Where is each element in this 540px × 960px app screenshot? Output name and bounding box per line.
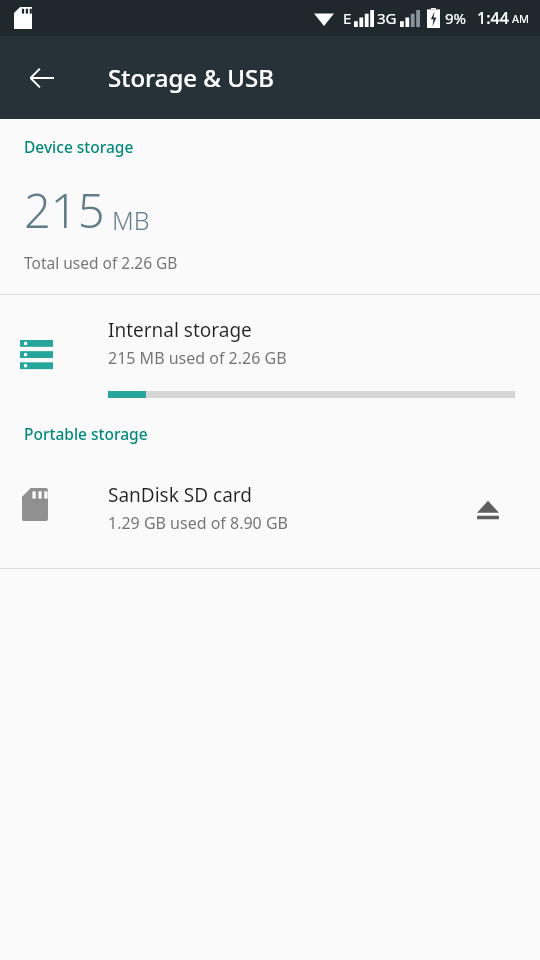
button[interactable]: Internal storage	[0, 295, 540, 409]
button[interactable]: Back	[16, 52, 68, 104]
staticText: Portable storage	[24, 423, 148, 444]
staticText: 215 MB used of 2.26 GB	[108, 347, 287, 369]
button[interactable]: Eject SD card	[464, 486, 512, 534]
staticText: 215	[24, 178, 105, 242]
staticText: Storage & USB	[108, 61, 274, 94]
staticText: Total used of 2.26 GB	[24, 252, 178, 273]
staticText: AM	[512, 11, 530, 26]
button[interactable]: SanDisk SD card	[0, 470, 540, 550]
staticText: E	[343, 8, 352, 28]
staticText: MB	[112, 203, 150, 237]
staticText: Device storage	[24, 136, 134, 157]
staticText: 1:44	[477, 7, 509, 29]
staticText: 9%	[445, 8, 467, 28]
staticText: 3G	[377, 8, 397, 28]
staticText: Internal storage	[108, 317, 252, 343]
staticText: 1.29 GB used of 8.90 GB	[108, 512, 288, 534]
staticText: SanDisk SD card	[108, 482, 252, 508]
